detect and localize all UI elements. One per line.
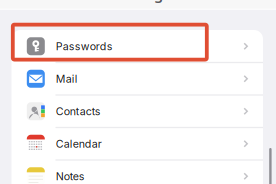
staticText: Calendar (56, 137, 102, 150)
staticText: Notes (56, 170, 85, 183)
button[interactable] (11, 160, 263, 184)
button[interactable] (11, 95, 263, 127)
button[interactable] (11, 30, 263, 62)
staticText: Settings (112, 0, 170, 4)
button[interactable] (11, 62, 263, 95)
staticText: Passwords (56, 40, 113, 53)
button[interactable] (11, 127, 263, 160)
staticText: Mail (56, 72, 78, 85)
staticText: Contacts (56, 105, 101, 118)
